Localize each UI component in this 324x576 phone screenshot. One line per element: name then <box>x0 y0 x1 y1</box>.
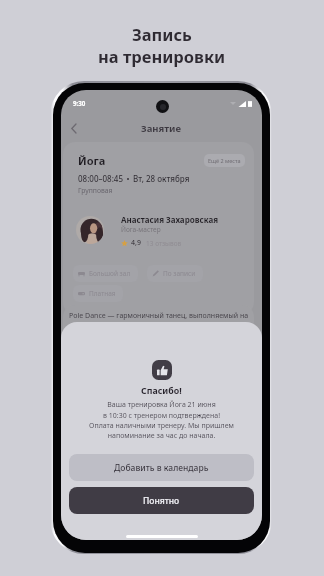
staticText: Ваша тренировка Йога 21 июня в 10:30 с т… <box>61 400 262 440</box>
staticText: Вт, 28 октября <box>133 173 190 184</box>
staticText: 13 отзывов <box>146 239 182 248</box>
button[interactable]: Добавить в календарь <box>69 454 254 481</box>
staticText: Йога-мастер <box>121 225 161 234</box>
staticText: Занятие <box>141 122 182 135</box>
staticText: Платная <box>89 289 116 298</box>
button[interactable]: Йога <box>63 142 254 314</box>
staticText: 08:00–08:45 <box>78 173 123 184</box>
staticText: Спасибо! <box>141 385 182 397</box>
staticText: Групповая <box>78 186 113 195</box>
button[interactable]: Назад <box>65 120 81 136</box>
staticText: Йога <box>78 153 106 168</box>
staticText: Ещё 2 места <box>208 157 241 164</box>
button[interactable]: Понятно <box>69 487 254 514</box>
staticText: Добавить в календарь <box>114 462 209 474</box>
staticText: Понятно <box>143 495 180 507</box>
button[interactable]: По записи <box>147 265 203 282</box>
staticText: на тренировки <box>98 45 226 67</box>
staticText: Большой зал <box>89 269 131 278</box>
staticText: Анастасия Захаровская <box>121 214 219 225</box>
staticText: 4,9 <box>131 238 141 248</box>
staticText: Запись <box>132 23 192 45</box>
button[interactable]: Большой зал <box>73 265 138 282</box>
staticText: 9:30 <box>73 99 86 107</box>
button[interactable]: Платная <box>73 285 123 302</box>
staticText: Pole Dance — гармоничный танец, выполняе… <box>69 311 249 321</box>
staticText: По записи <box>163 269 196 278</box>
